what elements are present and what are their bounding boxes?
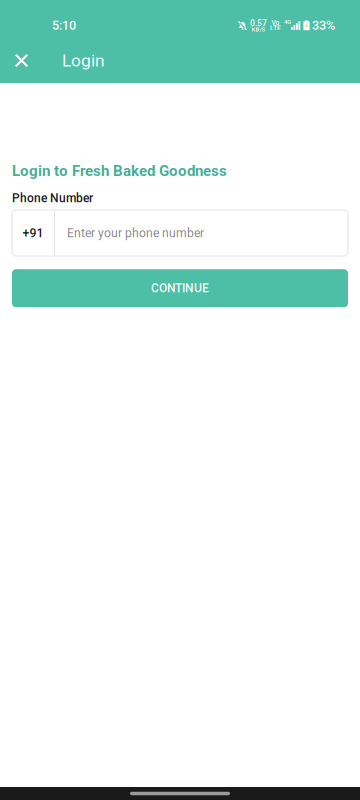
button[interactable]: Enter your phone number xyxy=(55,210,348,256)
staticText: 4G xyxy=(284,18,291,25)
staticText: Enter your phone number xyxy=(67,226,204,240)
staticText: Login xyxy=(62,50,105,71)
staticText: KB/S xyxy=(251,26,265,33)
staticText: CONTINUE xyxy=(151,281,209,295)
staticText: Phone Number xyxy=(12,191,93,205)
button[interactable]: CONTINUE xyxy=(12,269,348,307)
staticText: 33% xyxy=(312,18,335,33)
staticText: Vo xyxy=(271,19,279,27)
button[interactable]: +91 xyxy=(12,210,54,256)
staticText: Login to Fresh Baked Goodness xyxy=(12,162,227,180)
button[interactable]: Close xyxy=(0,38,43,83)
staticText: +91 xyxy=(22,226,43,240)
staticText: 5:10 xyxy=(52,18,76,33)
staticText: 0.57 xyxy=(250,18,267,28)
staticText: LTE xyxy=(270,24,281,32)
